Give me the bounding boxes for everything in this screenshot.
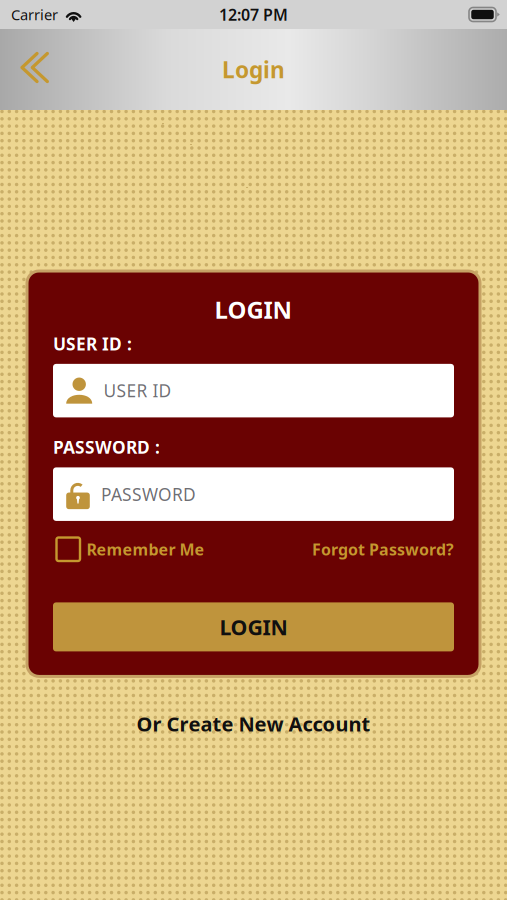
staticText: USER ID <box>103 379 171 402</box>
staticText: Login <box>222 54 285 84</box>
button[interactable]: Remember Me <box>56 537 204 561</box>
button[interactable]: LOGIN <box>53 602 454 651</box>
staticText: LOGIN <box>219 613 287 641</box>
button[interactable]: Or Create New Account <box>136 676 370 737</box>
staticText: Forgot Password? <box>312 539 454 560</box>
staticText: LOGIN <box>214 294 292 325</box>
staticText: Carrier <box>11 5 58 24</box>
staticText: PASSWORD : <box>53 435 160 458</box>
button[interactable]: Back <box>0 45 61 93</box>
staticText: PASSWORD <box>101 483 196 506</box>
staticText: Or Create New Account <box>136 710 370 737</box>
staticText: 12:07 PM <box>219 4 288 25</box>
staticText: Remember Me <box>86 539 204 560</box>
button[interactable]: Forgot Password? <box>312 539 454 560</box>
staticText: USER ID : <box>53 332 132 355</box>
